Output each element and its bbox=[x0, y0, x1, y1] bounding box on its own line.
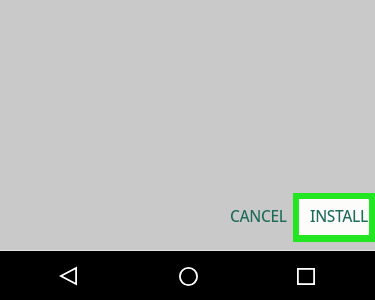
button[interactable]: INSTALL bbox=[299, 199, 369, 235]
button[interactable]: Home bbox=[166, 254, 210, 298]
button[interactable]: CANCEL bbox=[220, 196, 296, 234]
staticText: CANCEL bbox=[230, 205, 287, 226]
staticText: INSTALL bbox=[310, 205, 368, 226]
button[interactable]: Recent apps bbox=[284, 254, 328, 298]
button[interactable]: Back bbox=[46, 254, 90, 298]
